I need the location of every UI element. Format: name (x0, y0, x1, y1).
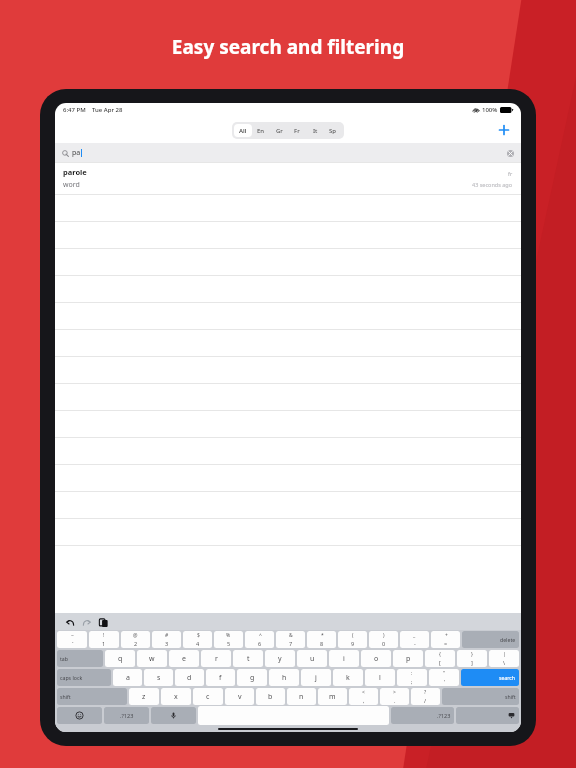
button[interactable]: w (137, 650, 167, 667)
button[interactable]: { (425, 650, 455, 667)
button[interactable]: $ (183, 631, 212, 648)
staticText: ' (444, 678, 446, 685)
button[interactable]: r (201, 650, 231, 667)
button[interactable]: c (193, 688, 223, 705)
staticText: f (219, 673, 222, 683)
button[interactable]: delete (462, 631, 519, 648)
button[interactable]: Dictation (151, 707, 196, 724)
staticText: 43 seconds ago (472, 181, 513, 188)
button[interactable]: " (429, 669, 459, 686)
button[interactable]: d (175, 669, 204, 686)
button[interactable]: Hide keyboard (456, 707, 519, 724)
button[interactable]: ) (369, 631, 398, 648)
button[interactable]: n (287, 688, 316, 705)
staticText: s (157, 673, 161, 683)
button[interactable]: q (105, 650, 135, 667)
button[interactable]: Sp (324, 124, 342, 137)
button[interactable]: Fr (288, 124, 306, 137)
button[interactable]: < (349, 688, 378, 705)
button[interactable]: shift (57, 688, 127, 705)
button[interactable]: k (333, 669, 363, 686)
button[interactable]: h (269, 669, 299, 686)
button[interactable]: f (206, 669, 235, 686)
button[interactable]: ! (89, 631, 119, 648)
button[interactable]: Paste (97, 616, 109, 628)
button[interactable]: i (329, 650, 359, 667)
button[interactable]: En (252, 124, 270, 137)
button[interactable]: z (129, 688, 159, 705)
button[interactable]: Redo (80, 616, 92, 628)
button[interactable]: It (306, 124, 324, 137)
staticText: % (226, 632, 231, 639)
button[interactable]: Clear (506, 149, 514, 157)
button[interactable]: .?123 (391, 707, 454, 724)
staticText: search (499, 674, 516, 681)
button[interactable]: } (457, 650, 487, 667)
button[interactable]: l (365, 669, 395, 686)
button[interactable]: e (169, 650, 199, 667)
button[interactable]: g (237, 669, 267, 686)
button[interactable]: Add (495, 121, 513, 139)
button[interactable]: s (144, 669, 173, 686)
button[interactable]: ? (411, 688, 440, 705)
button[interactable]: v (225, 688, 254, 705)
staticText: En (257, 127, 265, 135)
button[interactable]: : (397, 669, 427, 686)
button[interactable]: % (214, 631, 243, 648)
button[interactable]: > (380, 688, 409, 705)
button[interactable]: o (361, 650, 391, 667)
staticText: v (238, 692, 242, 702)
button[interactable]: * (307, 631, 336, 648)
button[interactable]: _ (400, 631, 429, 648)
button[interactable]: j (301, 669, 331, 686)
button[interactable]: @ (121, 631, 150, 648)
button[interactable]: pa (55, 143, 521, 162)
button[interactable]: Undo (64, 616, 76, 628)
button[interactable]: tab (57, 650, 103, 667)
staticText: , (363, 697, 365, 704)
staticText: n (299, 692, 304, 702)
staticText: | (503, 651, 506, 658)
button[interactable]: a (113, 669, 142, 686)
staticText: Easy search and filtering (0, 34, 576, 60)
button[interactable]: & (276, 631, 305, 648)
button[interactable]: search (461, 669, 519, 686)
button[interactable]: parole (55, 163, 521, 194)
button[interactable]: m (318, 688, 347, 705)
button[interactable]: ( (338, 631, 367, 648)
button[interactable]: # (152, 631, 181, 648)
button[interactable]: caps lock (57, 669, 111, 686)
staticText: word (63, 180, 80, 190)
staticText: 8 (320, 640, 324, 647)
button[interactable]: t (233, 650, 263, 667)
button[interactable]: b (256, 688, 285, 705)
button[interactable]: All (234, 124, 252, 137)
button[interactable]: ~ (57, 631, 87, 648)
button[interactable]: ^ (245, 631, 274, 648)
button[interactable]: x (161, 688, 191, 705)
button[interactable]: Gr (270, 124, 288, 137)
button[interactable]: .?123 (104, 707, 149, 724)
button[interactable]: + (431, 631, 460, 648)
button[interactable]: u (297, 650, 327, 667)
button[interactable]: | (489, 650, 519, 667)
staticText: \ (503, 659, 506, 666)
button[interactable]: y (265, 650, 295, 667)
button[interactable]: shift (442, 688, 519, 705)
button[interactable]: p (393, 650, 423, 667)
button[interactable]: Emoji (57, 707, 102, 724)
